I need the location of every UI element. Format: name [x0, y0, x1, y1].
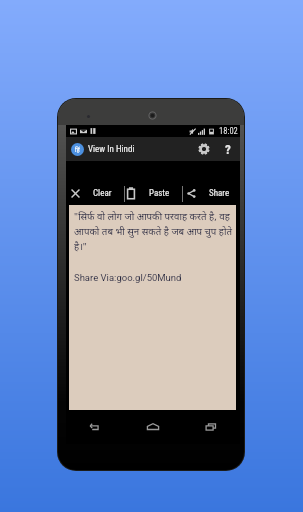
staticText: View In Hindi: [88, 144, 135, 155]
button[interactable]: Settings: [194, 139, 214, 159]
button[interactable]: Share: [182, 181, 240, 205]
button[interactable]: Help: [219, 140, 237, 158]
staticText: "सिर्फ वो लोग जो आपकी परवाह करते है, वह …: [74, 210, 234, 253]
staticText: हिं: [75, 146, 80, 154]
button[interactable]: Home: [124, 411, 182, 443]
button[interactable]: Paste: [124, 181, 182, 205]
staticText: Share Via:goo.gl/50Mund: [74, 272, 182, 283]
staticText: Clear: [93, 188, 112, 199]
staticText: ?: [225, 142, 231, 157]
button[interactable]: Back: [66, 411, 124, 443]
button[interactable]: Recents: [182, 411, 240, 443]
staticText: 18:02: [219, 126, 238, 136]
staticText: Paste: [149, 188, 170, 199]
button[interactable]: Clear: [66, 181, 124, 205]
staticText: Share: [209, 188, 230, 199]
